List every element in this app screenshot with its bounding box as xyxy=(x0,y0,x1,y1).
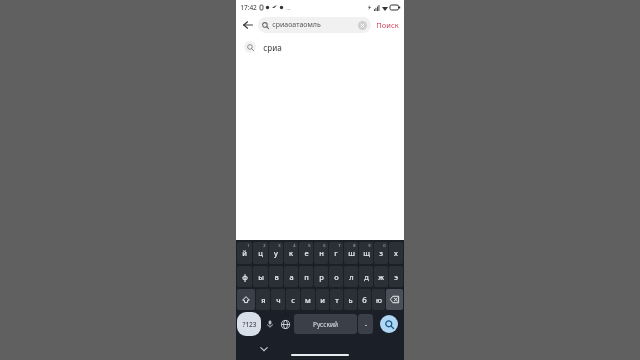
button[interactable]: э xyxy=(389,266,403,287)
staticText: е xyxy=(304,248,309,258)
button[interactable]: н xyxy=(314,242,328,264)
button[interactable]: з xyxy=(374,242,388,264)
staticText: 3 xyxy=(278,243,281,248)
button[interactable]: Очистить xyxy=(358,21,367,30)
staticText: ?123 xyxy=(242,320,257,329)
staticText: ч xyxy=(276,295,281,305)
staticText: 5 xyxy=(308,243,311,248)
button[interactable]: х xyxy=(389,242,403,264)
staticText: 2 xyxy=(263,243,266,248)
button[interactable]: п xyxy=(299,266,313,287)
staticText: ш xyxy=(348,248,355,258)
button[interactable]: л xyxy=(344,266,358,287)
button[interactable]: Голосовой ввод xyxy=(262,312,277,336)
staticText: Поиск xyxy=(376,20,399,30)
staticText: г xyxy=(334,248,338,258)
button[interactable]: д xyxy=(359,266,373,287)
staticText: п xyxy=(304,272,309,282)
staticText: й xyxy=(242,248,247,258)
staticText: з xyxy=(379,248,383,258)
button[interactable]: щ xyxy=(359,242,373,264)
button[interactable]: Назад xyxy=(240,17,256,33)
staticText: 6 xyxy=(323,243,326,248)
button[interactable]: ц xyxy=(253,242,268,264)
staticText: х xyxy=(394,248,398,258)
button[interactable]: к xyxy=(284,242,298,264)
button[interactable]: г xyxy=(329,242,343,264)
staticText: 1 xyxy=(247,243,250,248)
button[interactable]: сриаоатаомль xyxy=(258,17,371,33)
staticText: р xyxy=(319,272,324,282)
staticText: у xyxy=(274,248,278,258)
button[interactable]: у xyxy=(269,242,283,264)
staticText: Русский xyxy=(313,320,338,329)
button[interactable]: ж xyxy=(374,266,388,287)
button[interactable]: р xyxy=(314,266,328,287)
staticText: ы xyxy=(258,272,264,282)
staticText: ... xyxy=(286,4,291,12)
button[interactable]: ю xyxy=(372,289,385,310)
staticText: 17:42 xyxy=(240,3,257,12)
staticText: 8 xyxy=(353,243,356,248)
staticText: а xyxy=(289,272,294,282)
staticText: ж xyxy=(378,272,384,282)
button[interactable]: а xyxy=(284,266,298,287)
button[interactable]: ь xyxy=(344,289,357,310)
staticText: д xyxy=(364,272,369,282)
staticText: ф xyxy=(242,272,248,282)
button[interactable]: и xyxy=(316,289,329,310)
staticText: б xyxy=(362,295,367,305)
staticText: 7 xyxy=(338,243,341,248)
staticText: щ xyxy=(363,248,370,258)
button[interactable]: е xyxy=(299,242,313,264)
staticText: н xyxy=(319,248,324,258)
button[interactable]: Shift xyxy=(237,289,255,310)
staticText: 0 xyxy=(383,243,386,248)
button[interactable]: о xyxy=(329,266,343,287)
button[interactable]: . xyxy=(358,314,373,334)
staticText: . xyxy=(365,319,367,329)
button[interactable]: ф xyxy=(237,266,252,287)
staticText: с xyxy=(291,295,295,305)
button[interactable]: Русский xyxy=(294,314,357,334)
button[interactable]: б xyxy=(358,289,371,310)
staticText: сриа xyxy=(263,42,282,53)
button[interactable]: сриа xyxy=(236,36,404,58)
button[interactable]: с xyxy=(286,289,300,310)
staticText: о xyxy=(334,272,339,282)
staticText: сриаоатаомль xyxy=(272,20,321,30)
staticText: э xyxy=(394,272,398,282)
button[interactable]: в xyxy=(269,266,283,287)
button[interactable]: Скрыть клавиатуру xyxy=(258,343,270,355)
staticText: ь xyxy=(348,295,353,305)
button[interactable]: я xyxy=(256,289,270,310)
button[interactable]: ч xyxy=(271,289,285,310)
staticText: 4 xyxy=(293,243,296,248)
button[interactable]: Поиск xyxy=(374,18,401,32)
staticText: ю xyxy=(376,295,382,305)
button[interactable]: ?123 xyxy=(237,312,261,336)
staticText: и xyxy=(320,295,325,305)
staticText: л xyxy=(349,272,354,282)
button[interactable]: ы xyxy=(253,266,268,287)
button[interactable]: м xyxy=(301,289,315,310)
staticText: я xyxy=(261,295,266,305)
button[interactable]: Сменить язык xyxy=(278,312,293,336)
staticText: т xyxy=(335,295,339,305)
staticText: м xyxy=(305,295,311,305)
staticText: в xyxy=(274,272,279,282)
staticText: к xyxy=(289,248,293,258)
button[interactable]: Удалить xyxy=(386,289,403,310)
button[interactable]: й xyxy=(237,242,252,264)
staticText: 9 xyxy=(368,243,371,248)
button[interactable]: Искать xyxy=(380,315,398,333)
button[interactable]: т xyxy=(330,289,343,310)
button[interactable]: ш xyxy=(344,242,358,264)
staticText: ц xyxy=(258,248,263,258)
